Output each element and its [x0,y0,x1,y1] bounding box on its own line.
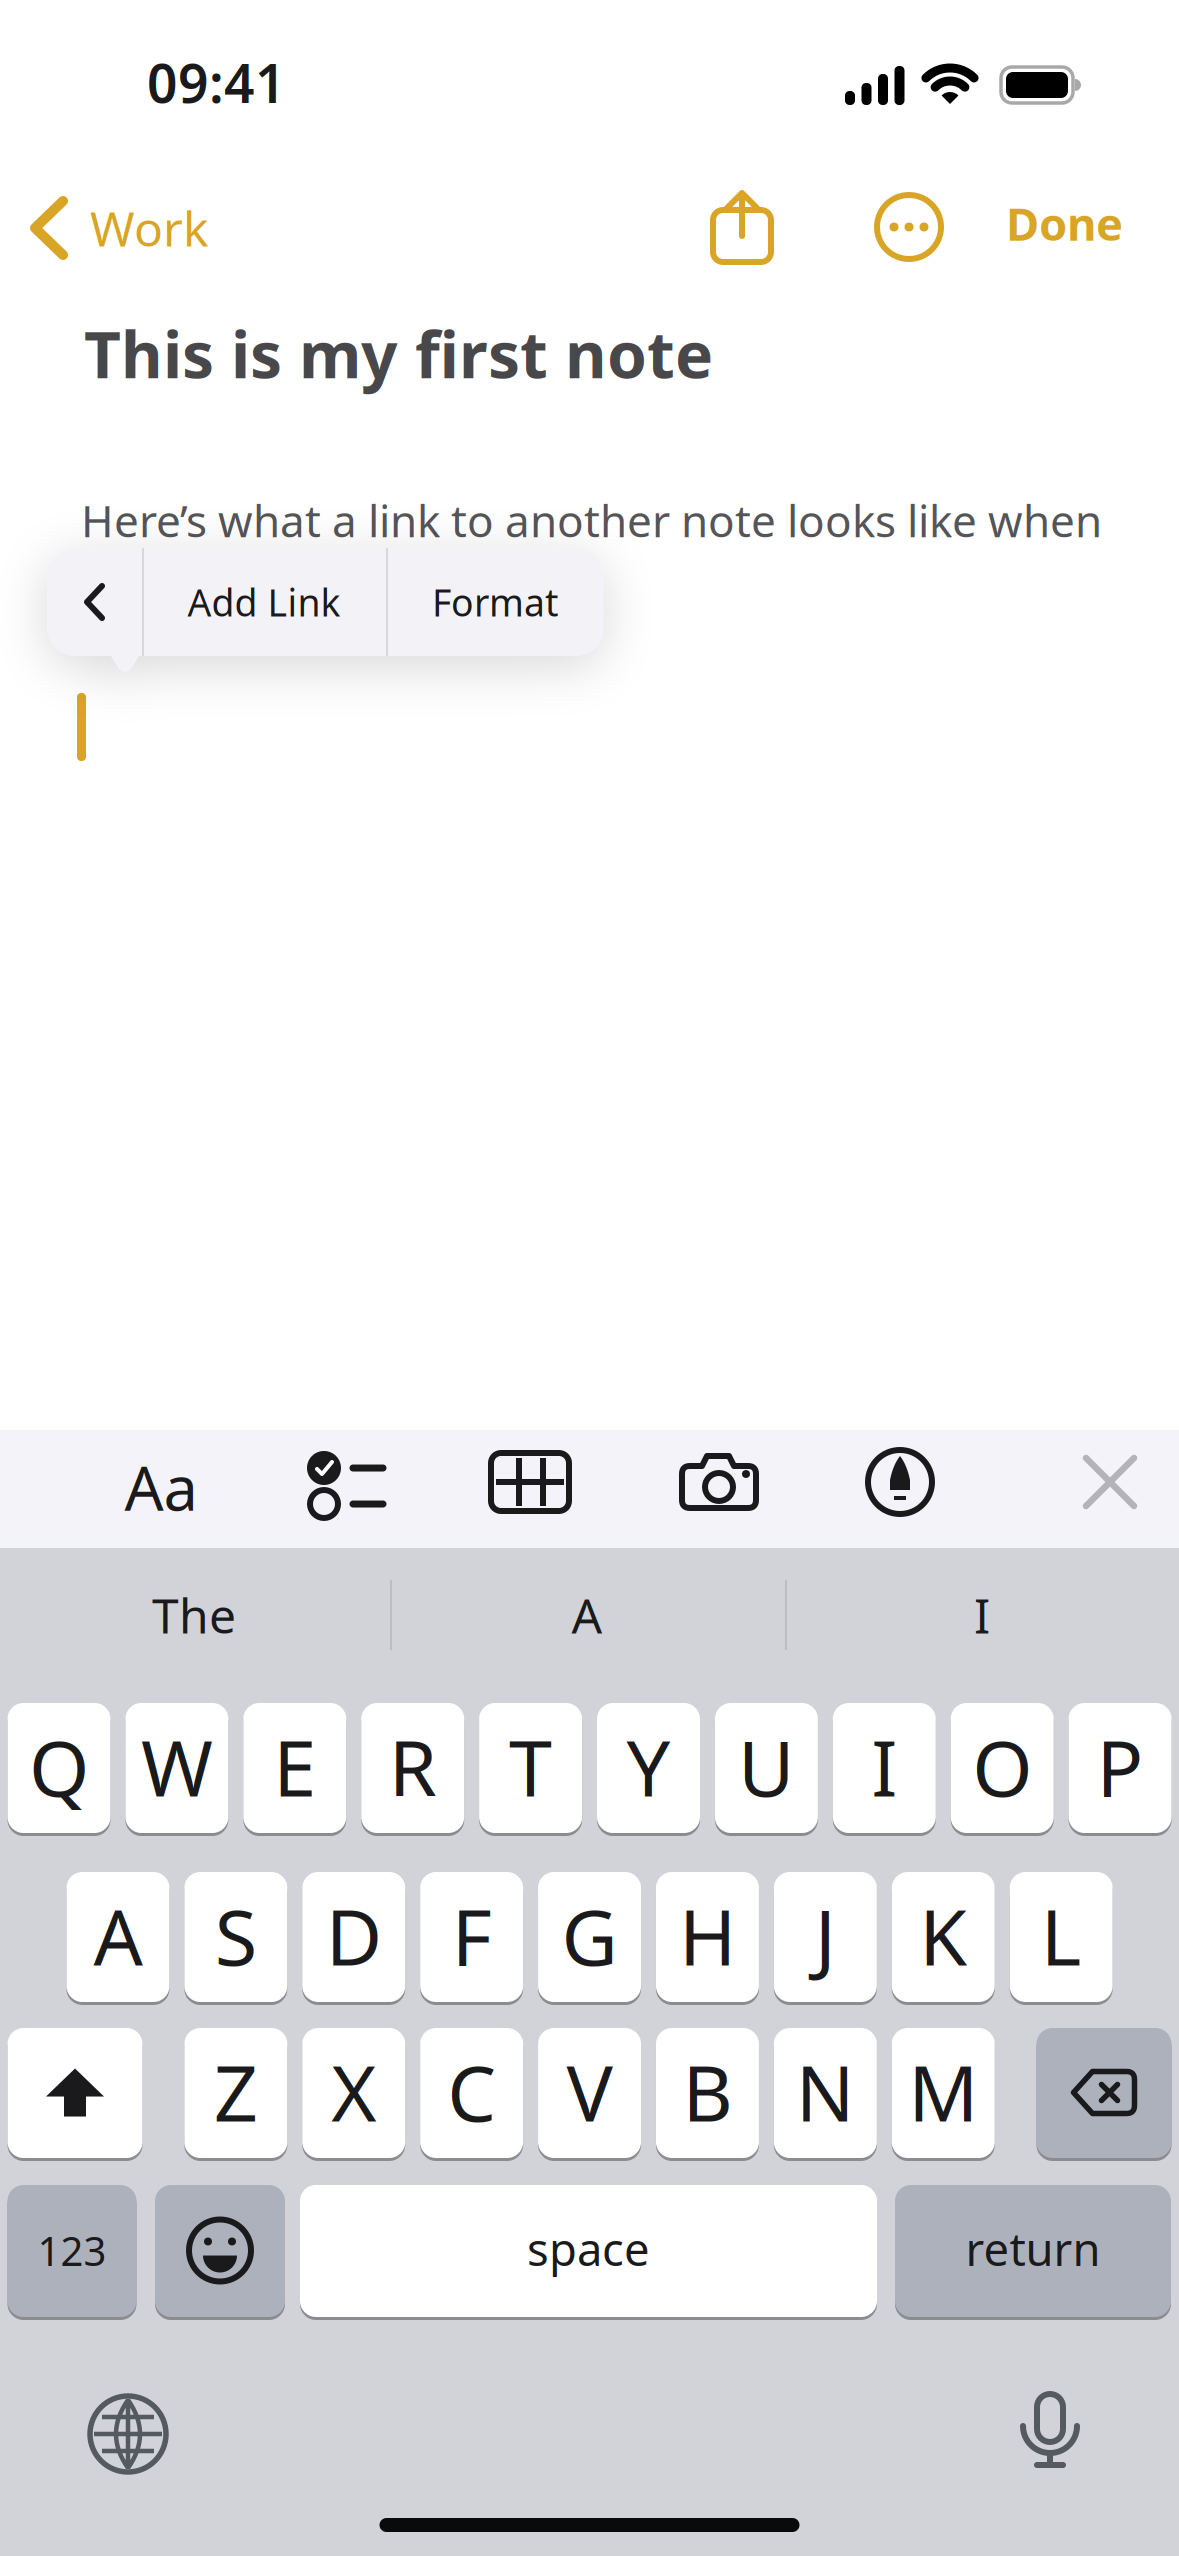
button[interactable]: O [951,1703,1054,1836]
button[interactable]: Previous [47,548,142,656]
button[interactable]: S [184,1872,287,2005]
staticText: Format [432,577,558,627]
button[interactable]: Camera [680,1452,758,1512]
staticText: Here’s what a link to another note looks… [81,491,1102,549]
button[interactable]: Add Link [142,548,699,676]
button[interactable]: V [538,2028,641,2161]
button[interactable]: Z [184,2028,287,2161]
staticText: Y [626,1715,670,1818]
button[interactable]: The [0,1560,388,1670]
button[interactable]: Checklist [307,1451,383,1519]
staticText: N [796,2040,855,2143]
staticText: I [974,1583,990,1647]
button[interactable]: C [420,2028,523,2161]
staticText: This is my first note [84,311,713,396]
button[interactable]: I [787,1560,1177,1670]
staticText: X [331,2040,376,2143]
staticText: L [1041,1884,1082,1987]
staticText: A [571,1583,602,1647]
staticText: E [273,1715,316,1818]
button[interactable]: Table [491,1453,569,1511]
button[interactable]: E [243,1703,346,1836]
button[interactable]: X [302,2028,405,2161]
staticText: O [972,1715,1032,1818]
button[interactable]: Next keyboard [90,2396,166,2472]
button[interactable]: J [774,1872,877,2005]
button[interactable]: Dismiss keyboard [1082,1454,1138,1510]
staticText: W [141,1715,213,1818]
staticText: G [562,1884,618,1987]
button[interactable]: R [361,1703,464,1836]
staticText: C [447,2040,496,2143]
staticText: J [815,1884,836,1987]
staticText: B [682,2040,732,2143]
button[interactable]: T [479,1703,582,1836]
button[interactable]: A [392,1560,782,1670]
button[interactable]: F [420,1872,523,2005]
staticText: K [919,1884,967,1987]
button[interactable]: Return [895,2185,1171,2320]
button[interactable]: N [774,2028,877,2161]
button[interactable]: A [66,1872,169,2005]
staticText: S [215,1884,257,1987]
button[interactable]: Numbers [7,2185,136,2320]
staticText: Aa [124,1446,197,1528]
button[interactable]: Emoji [155,2185,285,2320]
button[interactable]: Dictate [1020,2394,1080,2468]
button[interactable]: I [833,1703,936,1836]
staticText: Work [90,196,209,260]
button[interactable]: H [656,1872,759,2005]
button[interactable]: More [876,194,942,260]
button[interactable]: Delete [1036,2028,1171,2161]
staticText: The [152,1583,236,1647]
staticText: 09:41 [147,47,286,118]
staticText: Q [29,1715,89,1818]
button[interactable]: Shift [7,2028,142,2161]
staticText: I [871,1715,897,1818]
button[interactable]: Markup [868,1450,932,1514]
staticText: M [908,2040,978,2143]
button[interactable]: Share [712,190,772,264]
staticText: 123 [37,2224,106,2277]
staticText: return [965,2218,1100,2279]
staticText: A [93,1884,142,1987]
button[interactable]: Done [1006,193,1123,253]
staticText: V [567,2040,613,2143]
staticText: U [738,1715,795,1818]
staticText: T [509,1715,552,1818]
staticText: Z [214,2040,258,2143]
button[interactable]: M [892,2028,995,2161]
button[interactable]: Format text [124,1446,197,1528]
staticText: P [1097,1715,1144,1818]
button[interactable]: Y [597,1703,700,1836]
button[interactable]: W [125,1703,228,1836]
staticText: Add Link [187,577,340,627]
button[interactable]: Back [30,196,209,260]
staticText: space [527,2218,650,2279]
button[interactable]: Q [7,1703,110,1836]
button[interactable]: P [1069,1703,1172,1836]
button[interactable]: Format [386,548,943,676]
button[interactable]: Space [300,2185,877,2320]
staticText: F [452,1884,492,1987]
button[interactable]: L [1010,1872,1113,2005]
button[interactable]: U [715,1703,818,1836]
staticText: D [326,1884,382,1987]
staticText: R [389,1715,437,1818]
button[interactable]: K [892,1872,995,2005]
button[interactable]: D [302,1872,405,2005]
button[interactable]: B [656,2028,759,2161]
staticText: H [679,1884,736,1987]
staticText: Done [1006,193,1123,253]
button[interactable]: G [538,1872,641,2005]
